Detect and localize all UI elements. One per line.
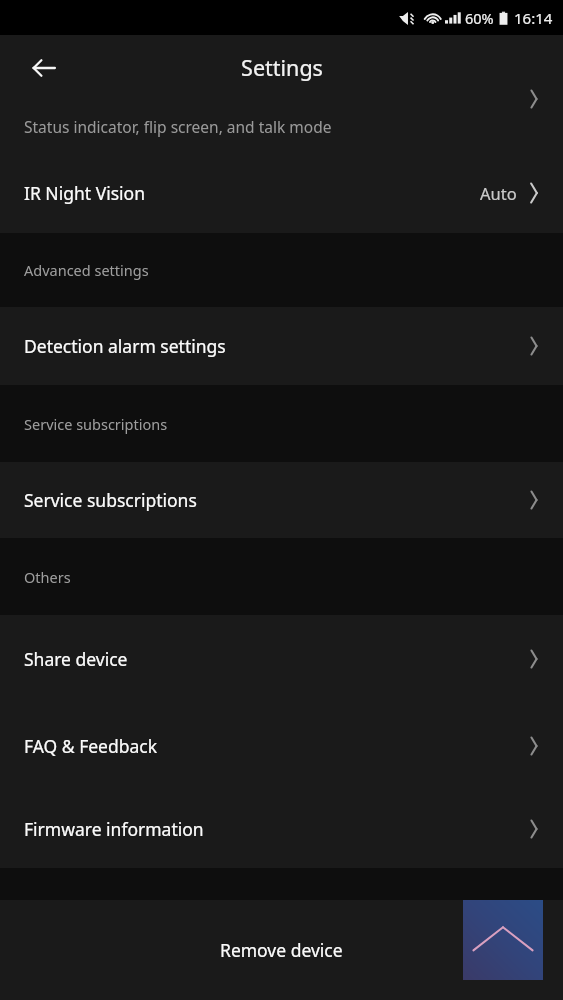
staticText: Remove device bbox=[220, 938, 343, 962]
staticText: Advanced settings bbox=[24, 260, 149, 280]
staticText: Settings bbox=[241, 53, 323, 82]
button[interactable]: Camera preview bbox=[463, 900, 543, 980]
staticText: 16:14 bbox=[514, 8, 553, 28]
button[interactable]: IR Night Vision bbox=[0, 152, 563, 233]
button[interactable]: Share device bbox=[0, 615, 563, 702]
staticText: 60% bbox=[465, 8, 494, 28]
staticText: Auto bbox=[480, 182, 517, 204]
staticText: Firmware information bbox=[24, 817, 204, 841]
staticText: Others bbox=[24, 567, 71, 587]
staticText: Share device bbox=[24, 647, 128, 671]
staticText: IR Night Vision bbox=[24, 181, 145, 205]
staticText: Status indicator, flip screen, and talk … bbox=[24, 116, 332, 137]
staticText: FAQ & Feedback bbox=[24, 734, 158, 758]
button[interactable]: Back bbox=[20, 44, 68, 92]
button[interactable]: FAQ & Feedback bbox=[0, 702, 563, 789]
button[interactable]: Firmware information bbox=[0, 789, 563, 868]
staticText: Detection alarm settings bbox=[24, 334, 226, 358]
button[interactable]: Status indicator, flip screen, and talk … bbox=[0, 100, 563, 152]
button[interactable]: Service subscriptions bbox=[0, 462, 563, 538]
staticText: Service subscriptions bbox=[24, 414, 168, 434]
button[interactable]: Detection alarm settings bbox=[0, 307, 563, 385]
button[interactable]: Remove device bbox=[192, 924, 371, 976]
staticText: Service subscriptions bbox=[24, 488, 197, 512]
